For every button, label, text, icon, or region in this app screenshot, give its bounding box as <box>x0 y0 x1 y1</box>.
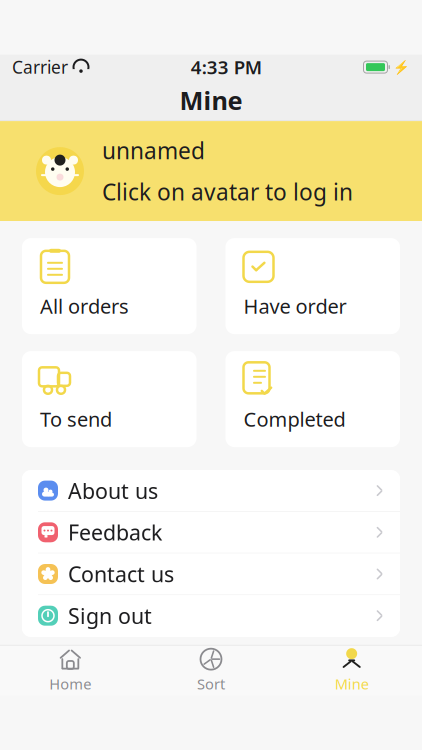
staticText: Sort <box>197 674 225 694</box>
button[interactable]: unnamed <box>0 121 422 221</box>
button[interactable]: Completed <box>225 351 400 447</box>
staticText: Click on avatar to log in <box>102 177 353 207</box>
button[interactable]: Sort <box>141 645 281 695</box>
staticText: Feedback <box>68 518 162 546</box>
staticText: unnamed <box>102 135 205 166</box>
button[interactable]: Have order <box>225 238 400 334</box>
staticText: To send <box>40 406 112 432</box>
staticText: 4:33 PM <box>191 55 262 79</box>
button[interactable]: To send <box>22 351 196 447</box>
button[interactable]: About us <box>22 470 400 512</box>
staticText: Home <box>49 674 91 694</box>
staticText: All orders <box>40 293 129 319</box>
staticText: Mine <box>179 83 242 117</box>
staticText: Mine <box>335 674 369 694</box>
staticText: Completed <box>243 406 345 432</box>
button[interactable]: Mine <box>281 645 422 695</box>
staticText: Have order <box>243 293 346 319</box>
button[interactable]: Sign out <box>22 595 400 637</box>
button[interactable]: All orders <box>22 238 196 334</box>
staticText: Carrier <box>12 56 68 79</box>
staticText: ⚡ <box>393 59 410 75</box>
staticText: Sign out <box>68 601 152 630</box>
button[interactable]: Contact us <box>22 553 400 595</box>
staticText: About us <box>68 476 158 505</box>
button[interactable]: Feedback <box>22 512 400 553</box>
staticText: Contact us <box>68 560 174 588</box>
button[interactable]: Home <box>0 645 141 695</box>
